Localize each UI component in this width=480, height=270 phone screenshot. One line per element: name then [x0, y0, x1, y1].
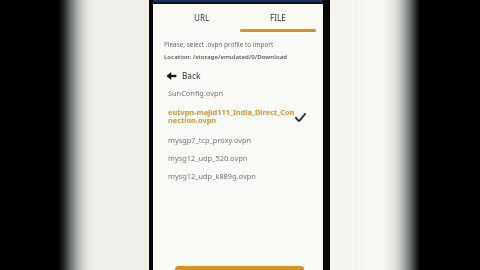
- staticText: SunConfig.ovpn: [168, 88, 224, 98]
- button[interactable]: [175, 266, 304, 270]
- button[interactable]: [157, 67, 227, 84]
- button[interactable]: [157, 5, 236, 30]
- button[interactable]: [163, 105, 313, 129]
- staticText: eutvpn-majid111_India_Direct_Con: [168, 107, 295, 117]
- button[interactable]: mysg12_udp_k889g.ovpn: [163, 168, 313, 184]
- other: Selected: [295, 113, 306, 122]
- button[interactable]: mysg12_udp_520.ovpn: [163, 150, 313, 166]
- staticText: mysg12_udp_k889g.ovpn: [168, 171, 256, 181]
- staticText: Please, select .ovpn profile to import: [164, 40, 274, 49]
- staticText: Back: [182, 70, 201, 81]
- staticText: FILE: [270, 12, 286, 23]
- button[interactable]: mysgp7_tcp_proxy.ovpn: [163, 132, 313, 148]
- staticText: Location: /storage/emulated/0/Download: [164, 52, 288, 60]
- staticText: mysg12_udp_520.ovpn: [168, 153, 248, 163]
- staticText: nection.ovpn: [168, 115, 217, 125]
- staticText: mysgp7_tcp_proxy.ovpn: [168, 135, 252, 145]
- other: Back: [166, 71, 177, 81]
- button[interactable]: [239, 5, 319, 30]
- staticText: URL: [194, 12, 210, 23]
- button[interactable]: SunConfig.ovpn: [163, 85, 313, 101]
